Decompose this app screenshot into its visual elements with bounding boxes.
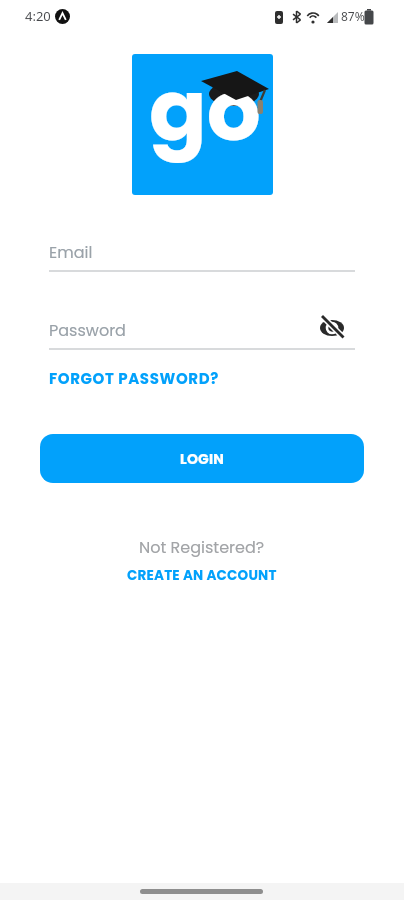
staticText: go	[149, 54, 261, 170]
staticText: Not Registered?	[139, 536, 265, 558]
button[interactable]: Email	[40, 236, 364, 276]
staticText: 4:20	[25, 7, 51, 25]
staticText: FORGOT PASSWORD?	[49, 368, 219, 389]
staticText: 87%	[341, 8, 365, 24]
staticText: Email	[49, 241, 93, 263]
button[interactable]: LOGIN	[40, 434, 364, 483]
button[interactable]: Password	[40, 314, 364, 354]
button[interactable]: CREATE AN ACCOUNT	[127, 566, 277, 585]
staticText: CREATE AN ACCOUNT	[127, 566, 277, 585]
button[interactable]: FORGOT PASSWORD?	[40, 366, 240, 392]
staticText: Password	[49, 319, 126, 341]
staticText: LOGIN	[180, 449, 225, 469]
